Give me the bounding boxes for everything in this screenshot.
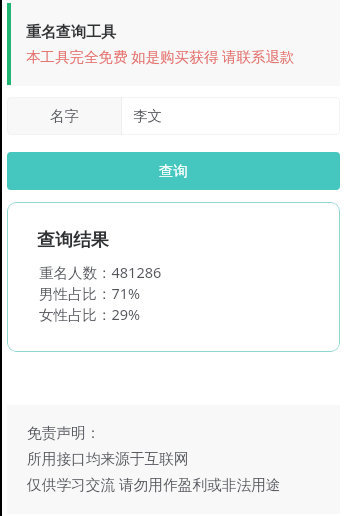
staticText: 查询 [159, 162, 188, 180]
button[interactable]: 名字 [7, 97, 340, 135]
staticText: 重名人数：481286 男性占比：71% 女性占比：29% [39, 262, 162, 324]
button[interactable]: 查询 [7, 152, 340, 190]
staticText: 李文 [133, 107, 162, 125]
staticText: 重名查询工具 [26, 23, 116, 42]
staticText: 名字 [50, 107, 79, 125]
staticText: 本工具完全免费 如是购买获得 请联系退款 [26, 46, 295, 66]
staticText: 查询结果 [37, 229, 109, 252]
staticText: 免责声明： 所用接口均来源于互联网 仅供学习交流 请勿用作盈利或非法用途 [27, 424, 281, 494]
